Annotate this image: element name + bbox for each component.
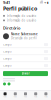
button[interactable]: Tab 2 xyxy=(10,90,20,100)
button[interactable]: Enviar xyxy=(3,71,48,76)
staticText: Enviar xyxy=(21,72,29,75)
staticText: Descrição do perfil xyxy=(11,36,37,40)
staticText: Informação do usuário xyxy=(6,14,36,18)
staticText: Tab xyxy=(44,96,47,98)
staticText: Nome Sobrenome xyxy=(11,32,38,36)
button[interactable]: Tab 4 xyxy=(31,90,41,100)
staticText: Informação do usuário xyxy=(6,19,36,22)
staticText: Campo xyxy=(3,64,12,67)
button[interactable]: Tab 3 xyxy=(20,90,31,100)
staticText: ıll ᯤ ▮ xyxy=(40,1,48,4)
staticText: 9:41 xyxy=(3,0,10,5)
staticText: Tab xyxy=(24,96,27,98)
staticText: Perfil público xyxy=(3,5,37,12)
button[interactable]: Tab 1 xyxy=(0,90,10,100)
button[interactable]: Tab 5 xyxy=(41,90,51,100)
staticText: Campo xyxy=(3,50,12,53)
staticText: Campo xyxy=(3,43,12,46)
staticText: Tab xyxy=(14,96,17,98)
button[interactable]: Nome Sobrenome xyxy=(0,31,51,41)
staticText: Campo xyxy=(3,57,12,60)
staticText: Tab xyxy=(4,96,7,98)
staticText: Tab xyxy=(34,96,37,98)
staticText: Diretório xyxy=(3,25,20,30)
